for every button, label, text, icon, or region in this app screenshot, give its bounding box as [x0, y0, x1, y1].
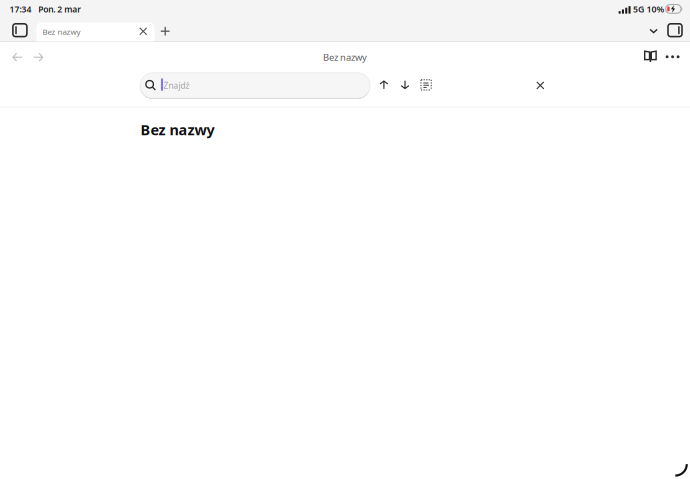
button[interactable]: Zakładki	[638, 46, 662, 68]
button[interactable]: Karta Bez nazwy	[36, 22, 154, 41]
staticText: Pon. 2 mar	[38, 3, 81, 15]
staticText: Bez nazwy	[323, 51, 367, 63]
button[interactable]: Nowa karta	[156, 22, 175, 41]
staticText: 5G	[633, 3, 644, 15]
button[interactable]: Następny wynik	[395, 75, 415, 95]
staticText: Znajdź	[163, 80, 189, 91]
button[interactable]: Więcej	[661, 46, 685, 68]
button[interactable]: Wstecz	[5, 46, 29, 68]
staticText: Bez nazwy	[140, 120, 214, 139]
button[interactable]: Do przodu	[26, 46, 50, 68]
staticText: 10%	[646, 3, 664, 15]
button[interactable]: Zaznacz tekst	[416, 75, 436, 95]
staticText: Bez nazwy	[42, 26, 80, 37]
button[interactable]: Zamknij wyszukiwanie	[530, 75, 550, 95]
button[interactable]: Zamknij kartę	[135, 23, 152, 40]
button[interactable]: Pokaż pasek boczny	[8, 19, 32, 41]
button[interactable]: Przegląd kart	[644, 22, 663, 39]
staticText: 17:34	[9, 3, 31, 15]
button[interactable]: Poprzedni wynik	[374, 75, 394, 95]
button[interactable]: Pasek boczny po prawej	[663, 19, 687, 41]
